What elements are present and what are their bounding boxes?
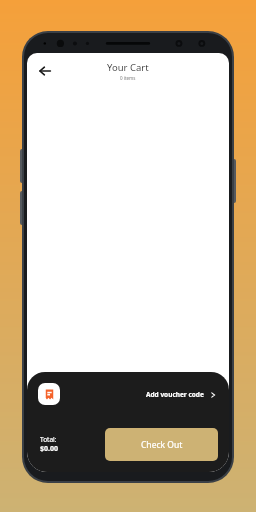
staticText: Add voucher code	[146, 390, 204, 399]
button[interactable]: Check Out	[105, 428, 218, 461]
staticText: 0 items	[120, 75, 136, 81]
staticText: Your Cart	[107, 61, 149, 74]
button[interactable]: Back	[34, 60, 56, 82]
button[interactable]: Voucher	[38, 383, 60, 405]
button[interactable]: Add voucher code	[144, 386, 218, 403]
staticText: Total:	[40, 435, 57, 444]
staticText: $0.00	[40, 444, 58, 454]
staticText: Check Out	[141, 439, 183, 451]
